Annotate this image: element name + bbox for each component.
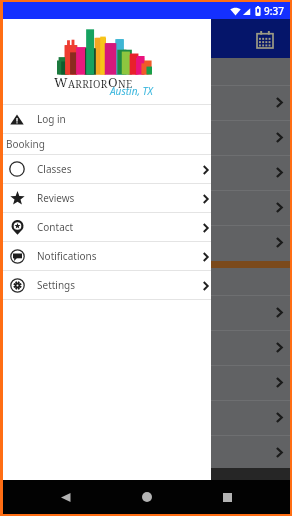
staticText: Notifications: [37, 249, 97, 263]
button[interactable]: [3, 155, 290, 190]
button[interactable]: Home: [129, 480, 165, 514]
staticText: Settings: [37, 278, 76, 292]
staticText: W: [54, 73, 68, 91]
button[interactable]: Log in: [3, 105, 211, 133]
staticText: 9:37: [264, 4, 284, 18]
staticText: Contact: [37, 220, 74, 234]
staticText: Log in: [37, 112, 66, 126]
button[interactable]: Notifications: [3, 242, 211, 270]
button[interactable]: Recents: [209, 480, 245, 514]
staticText: Reviews: [37, 191, 75, 205]
staticText: Booking: [6, 137, 45, 151]
staticText: O: [108, 73, 118, 91]
button[interactable]: Classes: [3, 155, 211, 183]
staticText: Classes: [37, 162, 72, 176]
button[interactable]: [3, 85, 290, 120]
button[interactable]: Reviews: [3, 184, 211, 212]
button[interactable]: [3, 365, 290, 400]
button[interactable]: [3, 330, 290, 365]
button[interactable]: [3, 120, 290, 155]
button[interactable]: Settings: [3, 271, 211, 299]
button[interactable]: [3, 190, 290, 225]
button[interactable]: [3, 435, 290, 470]
staticText: ARRIOR: [68, 77, 108, 91]
button[interactable]: [3, 225, 290, 260]
staticText: Austin, TX: [110, 84, 153, 98]
button[interactable]: Contact: [3, 213, 211, 241]
button[interactable]: Back: [48, 480, 84, 514]
button[interactable]: [3, 295, 290, 330]
button[interactable]: [3, 400, 290, 435]
staticText: NE: [118, 77, 133, 91]
button[interactable]: Calendar: [252, 26, 278, 52]
